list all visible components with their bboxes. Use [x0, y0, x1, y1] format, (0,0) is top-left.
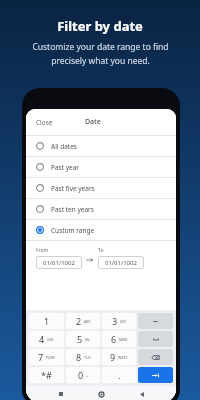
staticText: +	[86, 373, 89, 378]
button[interactable]: Custom range	[26, 220, 176, 240]
staticText: MNO	[119, 337, 128, 342]
staticText: Customize your date range to find	[32, 41, 169, 53]
staticText: 6	[111, 333, 117, 345]
button[interactable]: 6	[102, 331, 136, 347]
button[interactable]: Dash	[138, 313, 173, 329]
button[interactable]: Past ten years	[26, 199, 176, 219]
staticText: 1	[44, 315, 50, 327]
staticText: *#	[41, 369, 52, 381]
staticText: 7	[38, 351, 44, 363]
staticText: Filter by date	[57, 17, 143, 35]
button[interactable]: 2	[66, 313, 100, 329]
staticText: 01/01/1002	[43, 259, 75, 267]
staticText: From	[36, 247, 49, 254]
staticText: Close	[36, 118, 53, 127]
staticText: PQRS	[46, 355, 55, 360]
staticText: To	[98, 247, 104, 254]
staticText: 8	[76, 351, 82, 363]
staticText: GHI	[47, 337, 54, 342]
button[interactable]: .	[102, 367, 136, 383]
button[interactable]: Recents	[55, 388, 67, 400]
button[interactable]: *#	[29, 367, 64, 383]
button[interactable]: 0	[66, 367, 100, 383]
button[interactable]: 01/01/1002	[98, 256, 144, 269]
button[interactable]: Home	[95, 388, 107, 400]
staticText: DEF	[120, 319, 127, 324]
button[interactable]: 3	[102, 313, 136, 329]
button[interactable]: All dates	[26, 136, 176, 156]
button[interactable]: 01/01/1002	[36, 256, 82, 269]
staticText: Past ten years	[51, 205, 94, 214]
staticText: 9	[110, 351, 116, 363]
staticText: precisely what you need.	[51, 55, 150, 67]
button[interactable]: 4	[29, 331, 64, 347]
button[interactable]: Past five years	[26, 178, 176, 198]
button[interactable]: 8	[66, 349, 100, 365]
staticText: Custom range	[51, 226, 95, 235]
staticText: ABC	[84, 319, 91, 324]
button[interactable]: Back	[136, 388, 148, 400]
button[interactable]: Space	[138, 331, 173, 347]
button[interactable]: Close	[34, 115, 55, 130]
staticText: 3	[112, 315, 118, 327]
other: to	[86, 256, 94, 264]
button[interactable]: 1	[29, 313, 64, 329]
staticText: All dates	[51, 142, 77, 151]
staticText: 5	[77, 333, 83, 345]
staticText: Date	[85, 117, 101, 127]
button[interactable]: Next	[138, 367, 173, 383]
button[interactable]: 9	[102, 349, 136, 365]
staticText: 0	[78, 369, 84, 381]
button[interactable]: 7	[29, 349, 64, 365]
staticText: 2	[76, 315, 82, 327]
button[interactable]: 5	[66, 331, 100, 347]
staticText: Past year	[51, 163, 80, 172]
staticText: 01/01/1002	[105, 259, 137, 267]
staticText: .	[118, 369, 121, 381]
staticText: 4	[39, 333, 45, 345]
staticText: TUV	[84, 355, 91, 360]
button[interactable]: Past year	[26, 157, 176, 177]
staticText: JKL	[85, 337, 90, 342]
staticText: Past five years	[51, 184, 95, 193]
button[interactable]: Backspace	[138, 349, 173, 365]
staticText: WXYZ	[118, 355, 128, 360]
